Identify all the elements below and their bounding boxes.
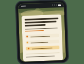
button[interactable]: Secondary action bbox=[25, 39, 59, 45]
button[interactable]: Primary action bbox=[25, 33, 59, 39]
button[interactable]: Alert bbox=[25, 45, 60, 51]
other: Alert bbox=[28, 47, 30, 50]
